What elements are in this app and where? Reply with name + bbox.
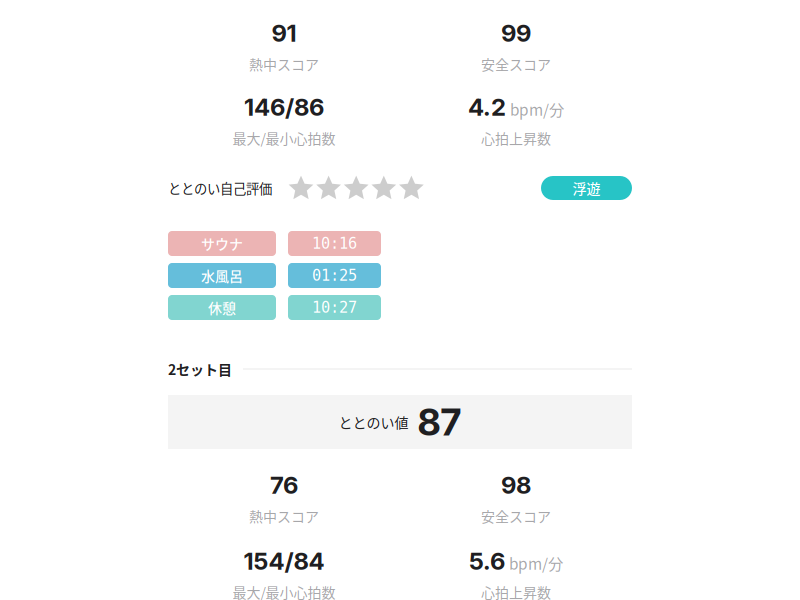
staticText: 10:16 [312,235,357,252]
staticText: 01:25 [312,267,357,284]
staticText: 146/86 [244,92,324,121]
staticText: 2セット目 [168,359,232,379]
staticText: 87 [417,399,461,445]
staticText: ととのい値 [338,412,408,432]
staticText: 76 [270,470,298,499]
staticText: 心拍上昇数 [481,582,551,600]
staticText: 5.6 [469,546,505,575]
staticText: bpm/分 [510,98,564,120]
staticText: 98 [501,470,531,499]
staticText: 安全スコア [481,54,551,74]
staticText: 熱中スコア [249,506,319,526]
staticText: 水風呂 [201,265,243,286]
staticText: bpm/分 [509,552,563,574]
staticText: 10:27 [312,299,357,316]
staticText: 浮遊 [572,178,600,198]
staticText: 熱中スコア [249,54,319,74]
staticText: 154/84 [243,546,324,575]
staticText: 心拍上昇数 [481,128,551,148]
staticText: 4.2 [468,92,506,121]
staticText: 91 [271,18,296,47]
staticText: サウナ [201,233,243,254]
staticText: ととのい自己評価 [168,178,272,198]
staticText: 休憩 [208,297,236,318]
staticText: 最大/最小心拍数 [232,128,335,148]
staticText: 99 [501,18,531,47]
staticText: 安全スコア [481,506,551,526]
staticText: 最大/最小心拍数 [232,582,335,600]
button[interactable]: 浮遊 [541,176,632,200]
